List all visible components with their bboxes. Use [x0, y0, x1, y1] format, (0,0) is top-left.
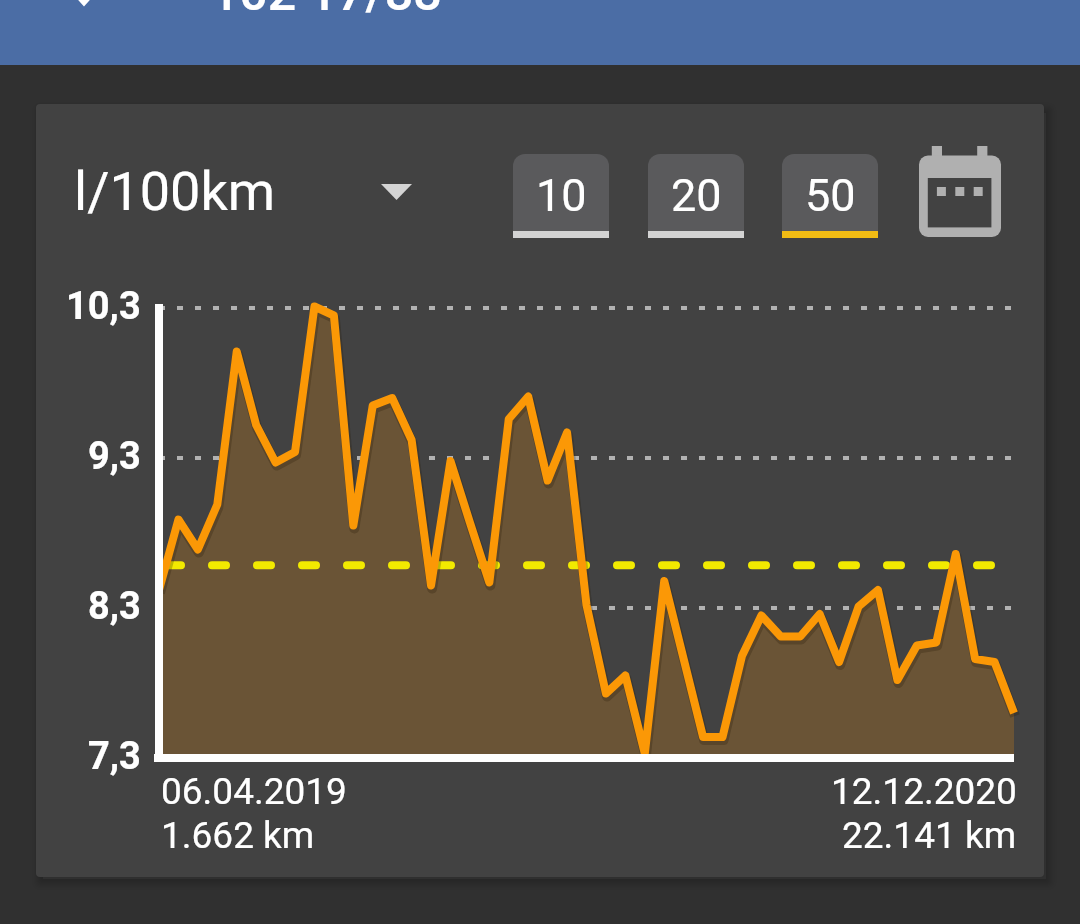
staticText: 10 — [536, 169, 587, 222]
button[interactable]: 50 — [782, 154, 878, 238]
staticText: 20 — [671, 169, 722, 222]
staticText: 10,3 — [66, 284, 141, 329]
staticText: 50 — [805, 169, 856, 222]
staticText: 7,3 — [88, 734, 141, 779]
staticText: 9,3 — [88, 434, 141, 479]
staticText: 12.12.2020 — [831, 770, 1017, 813]
button[interactable]: 20 — [648, 154, 744, 238]
button[interactable]: l/100km — [74, 154, 424, 229]
staticText: 8,3 — [88, 584, 141, 629]
staticText: 06.04.2019 — [161, 770, 347, 813]
staticText: l/100km — [74, 160, 276, 223]
staticText: 1.662 km — [161, 814, 315, 857]
button[interactable]: Select date range — [908, 139, 1012, 243]
button[interactable]: Navigate up — [0, 0, 150, 65]
button[interactable]: 10 — [513, 154, 609, 238]
staticText: 102 17/33 — [211, 0, 443, 23]
staticText: 22.141 km — [842, 814, 1017, 857]
